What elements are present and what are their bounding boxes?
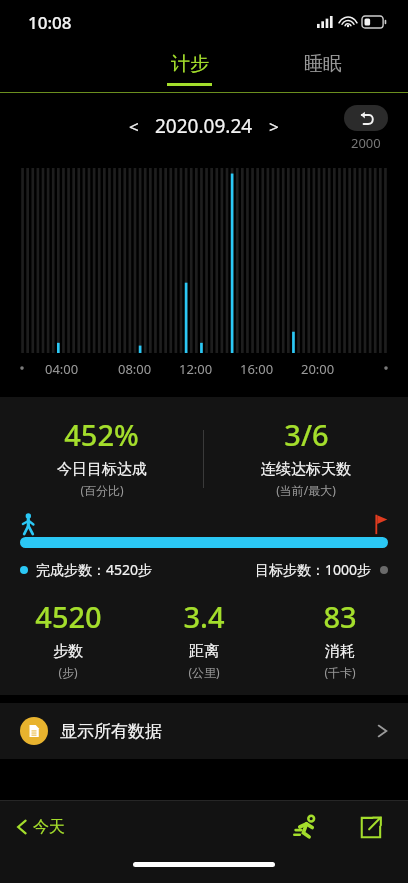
staticText: 3.4 bbox=[183, 597, 225, 636]
staticText: 2020.09.24 bbox=[155, 113, 253, 139]
staticText: 目标步数：1000步 bbox=[255, 560, 372, 579]
button[interactable]: Exercise bbox=[286, 807, 326, 847]
button[interactable]: Share bbox=[350, 807, 390, 847]
staticText: 消耗 bbox=[325, 642, 355, 661]
button[interactable]: Previous day bbox=[119, 111, 149, 141]
staticText: 步数 bbox=[53, 642, 83, 661]
staticText: 2000 bbox=[351, 134, 381, 152]
staticText: (当前/最大) bbox=[276, 482, 336, 498]
button[interactable]: 睡眠 bbox=[256, 44, 390, 93]
staticText: (千卡) bbox=[324, 664, 356, 680]
staticText: 12:00 bbox=[179, 360, 213, 378]
staticText: 08:00 bbox=[118, 360, 152, 378]
staticText: 16:00 bbox=[240, 360, 274, 378]
staticText: 04:00 bbox=[45, 360, 79, 378]
staticText: 计步 bbox=[171, 52, 209, 76]
button[interactable]: Sync bbox=[344, 105, 388, 131]
staticText: 4520 bbox=[35, 597, 102, 636]
staticText: > bbox=[269, 115, 279, 138]
staticText: 10:08 bbox=[28, 11, 72, 34]
staticText: 今天 bbox=[33, 817, 65, 837]
button[interactable]: 计步 bbox=[122, 44, 256, 93]
staticText: 距离 bbox=[189, 642, 219, 661]
staticText: 83 bbox=[323, 597, 357, 636]
staticText: 452% bbox=[64, 415, 139, 454]
staticText: 睡眠 bbox=[304, 52, 342, 76]
button[interactable]: 显示所有数据 bbox=[0, 703, 408, 759]
staticText: 完成步数：4520步 bbox=[36, 560, 153, 579]
staticText: 今日目标达成 bbox=[57, 460, 147, 479]
button[interactable]: Next day bbox=[259, 111, 289, 141]
staticText: (步) bbox=[58, 664, 78, 680]
staticText: 连续达标天数 bbox=[261, 460, 351, 479]
button[interactable]: 今天 bbox=[16, 817, 65, 837]
staticText: < bbox=[129, 115, 139, 138]
staticText: 3/6 bbox=[284, 415, 329, 454]
staticText: (公里) bbox=[188, 664, 220, 680]
staticText: 20:00 bbox=[301, 360, 335, 378]
staticText: 显示所有数据 bbox=[60, 721, 162, 742]
staticText: (百分比) bbox=[80, 482, 124, 498]
